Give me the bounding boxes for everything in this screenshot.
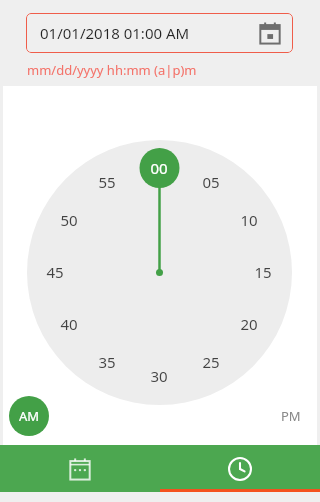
button[interactable]: Time tab [160,445,320,492]
staticText: 00 [150,158,168,178]
staticText: mm/dd/yyyy hh:mm (a|p)m [27,61,197,79]
button[interactable]: Open calendar [259,22,281,44]
staticText: 20 [240,314,258,334]
staticText: 05 [202,172,220,192]
staticText: 30 [150,366,168,386]
button[interactable]: PM [273,396,309,436]
staticText: 35 [98,352,116,372]
staticText: AM [19,407,40,425]
button[interactable]: AM [9,396,49,436]
button[interactable]: Date tab [0,445,160,492]
staticText: 55 [98,172,116,192]
staticText: PM [281,407,301,425]
staticText: 50 [60,210,78,230]
staticText: 40 [60,314,78,334]
staticText: 01/01/2018 01:00 AM [40,23,190,43]
button[interactable]: 01/01/2018 01:00 AM [26,13,293,53]
staticText: 25 [202,352,220,372]
button[interactable]: 00 [27,140,292,405]
staticText: 10 [240,210,258,230]
staticText: 15 [254,262,272,282]
staticText: 45 [46,262,64,282]
